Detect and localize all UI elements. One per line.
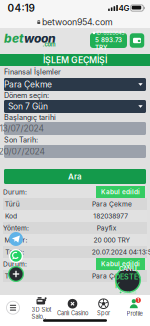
staticText: Türü: [5, 272, 20, 280]
staticText: CANLI: [119, 265, 137, 273]
staticText: betwoon954.com: [42, 17, 113, 27]
staticText: 20.07.2024 04:13:59: [92, 248, 150, 256]
staticText: Başlangıç tarihi: [4, 113, 56, 122]
button[interactable]: 1: [119, 297, 150, 319]
staticText: Payfix: [97, 224, 117, 232]
staticText: Durum:: [3, 260, 27, 268]
staticText: Kod: [5, 212, 17, 220]
staticText: Finansal İşlemler: [4, 68, 61, 76]
button[interactable]: Spor: [88, 297, 119, 319]
button[interactable]: Ara: [4, 169, 146, 184]
staticText: Para Çekme: [92, 200, 132, 208]
button[interactable]: Deposit: [130, 33, 144, 48]
staticText: 4G: [118, 3, 129, 13]
staticText: 1: [137, 297, 139, 303]
button[interactable]: 20/07/2024: [4, 145, 146, 158]
staticText: Ara: [68, 172, 82, 181]
staticText: Profile: [126, 310, 142, 317]
staticText: DESTEK: [115, 273, 141, 290]
staticText: Durum:: [3, 188, 27, 196]
staticText: Türü: [5, 200, 20, 208]
staticText: Para Çekme: [4, 79, 52, 90]
staticText: Canlı Casino: [57, 310, 88, 317]
button[interactable]: [0, 297, 26, 319]
staticText: Kabul edildi: [101, 260, 140, 268]
button[interactable]: 3D Slot Salo..: [26, 297, 57, 319]
staticText: 3D Slot Salo..: [31, 306, 51, 320]
button[interactable]: Son 7 Gün: [4, 100, 146, 113]
staticText: Tarih:: [5, 248, 24, 256]
staticText: Kabul edildi: [101, 188, 140, 196]
staticText: 13/07/2024: [0, 123, 44, 134]
button[interactable]: More contacts: [8, 266, 24, 282]
staticText: 04:19: [7, 2, 34, 14]
staticText: Son 7 Gün: [8, 101, 48, 112]
staticText: 5 893.73 TRY: [95, 36, 122, 51]
staticText: Son Tarih:: [4, 136, 38, 144]
staticText: woon: [24, 31, 56, 46]
staticText: 20 000 TRY: [93, 236, 130, 244]
button[interactable]: WhatsApp: [9, 249, 23, 263]
staticText: ONLINE: [122, 290, 136, 295]
button[interactable]: Para Çekme: [4, 78, 146, 91]
staticText: Dönem seçin:: [4, 91, 49, 100]
staticText: ID: 8920643: [96, 30, 124, 36]
button[interactable]: 13/07/2024: [4, 122, 146, 135]
staticText: bet: [4, 31, 24, 46]
button[interactable]: Canlı Casino: [57, 297, 88, 319]
staticText: Para Çekme: [92, 272, 132, 280]
staticText: 20/07/2024: [0, 146, 45, 157]
button[interactable]: ID: 8920643: [90, 33, 127, 48]
button[interactable]: Live support: [115, 267, 141, 293]
staticText: Spor: [97, 310, 110, 317]
staticText: .com: [42, 41, 55, 48]
staticText: 182038977: [93, 212, 128, 220]
staticText: İŞLEM GEÇMİŞİ: [43, 55, 107, 65]
staticText: Miktar:: [5, 236, 28, 244]
button[interactable]: Telegram: [9, 232, 23, 246]
staticText: Yöntem:: [3, 224, 29, 232]
